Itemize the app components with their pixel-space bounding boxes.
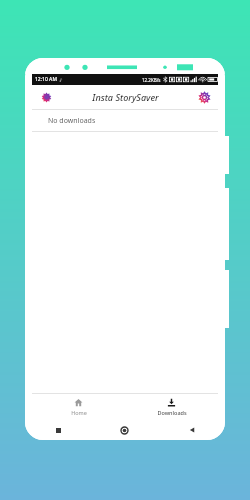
button[interactable]: Downloads <box>125 394 218 420</box>
staticText: Downloads <box>157 409 187 416</box>
button[interactable]: Back <box>158 420 225 440</box>
button[interactable]: No downloads <box>32 110 218 131</box>
staticText: 12:10 AM <box>35 76 57 83</box>
button[interactable]: Home <box>91 420 158 440</box>
button[interactable]: Settings <box>195 88 213 106</box>
staticText: 12.2KB/s <box>142 77 161 83</box>
button[interactable]: Home <box>32 394 125 420</box>
staticText: No downloads <box>48 116 96 126</box>
staticText: Home <box>71 409 87 416</box>
staticText: Insta StorySaver <box>92 91 159 103</box>
button[interactable]: Recents <box>25 420 91 440</box>
button[interactable]: Instagram <box>37 88 55 106</box>
